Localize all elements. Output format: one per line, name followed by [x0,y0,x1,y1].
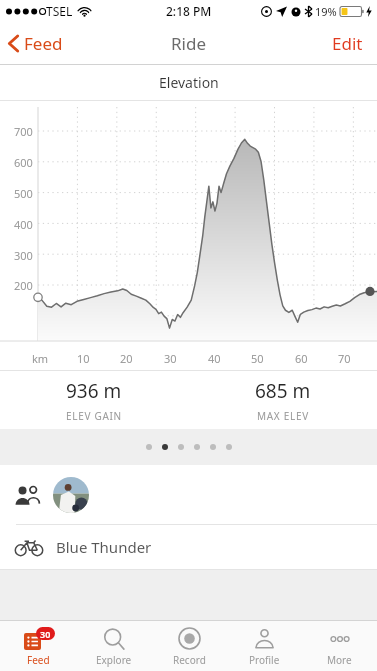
staticText: 936 m [66,378,122,404]
button[interactable]: Edit [318,26,377,61]
button[interactable]: 30 [0,621,76,671]
staticText: 40 [208,351,221,366]
staticText: 400 [14,217,33,232]
other: Record [178,627,201,650]
button[interactable]: Gear [0,525,377,569]
staticText: 30 [164,351,177,366]
staticText: 2:18 PM [166,3,212,19]
staticText: 300 [14,248,33,263]
staticText: 19% [315,4,337,19]
button[interactable]: Athletes [0,465,377,524]
other: Athletes [15,485,41,505]
button[interactable]: Explore [76,621,152,671]
staticText: 500 [14,186,33,201]
staticText: Explore [96,653,132,667]
other: More [329,629,351,649]
staticText: 30 [40,628,51,640]
button[interactable]: Profile [227,621,302,671]
button[interactable]: Record [152,621,227,671]
other: Profile [254,628,275,649]
staticText: Edit [332,32,363,55]
button[interactable]: 685 m [188,371,377,429]
button[interactable]: 936 m [0,371,188,429]
other: Gear [16,538,42,556]
staticText: Blue Thunder [56,537,152,557]
staticText: More [327,653,352,667]
staticText: km [32,351,49,366]
staticText: 10 [77,351,90,366]
button[interactable]: More [302,621,377,671]
staticText: Elevation [159,73,219,92]
staticText: 700 [14,124,33,139]
staticText: 685 m [255,378,311,404]
staticText: Record [173,653,206,667]
staticText: ELEV GAIN [66,409,122,423]
staticText: Profile [249,653,280,667]
other: Explore [103,628,125,650]
staticText: 50 [251,351,264,366]
staticText: 60 [295,351,308,366]
staticText: Ride [171,32,207,55]
button[interactable]: Athlete avatar [53,477,89,513]
staticText: 200 [14,278,33,293]
staticText: 600 [14,155,33,170]
staticText: Feed [24,32,63,55]
button[interactable]: Feed [0,26,75,61]
staticText: TSEL [46,3,73,19]
staticText: MAX ELEV [257,409,309,423]
staticText: 20 [120,351,133,366]
staticText: 70 [338,351,351,366]
staticText: Feed [27,653,50,667]
